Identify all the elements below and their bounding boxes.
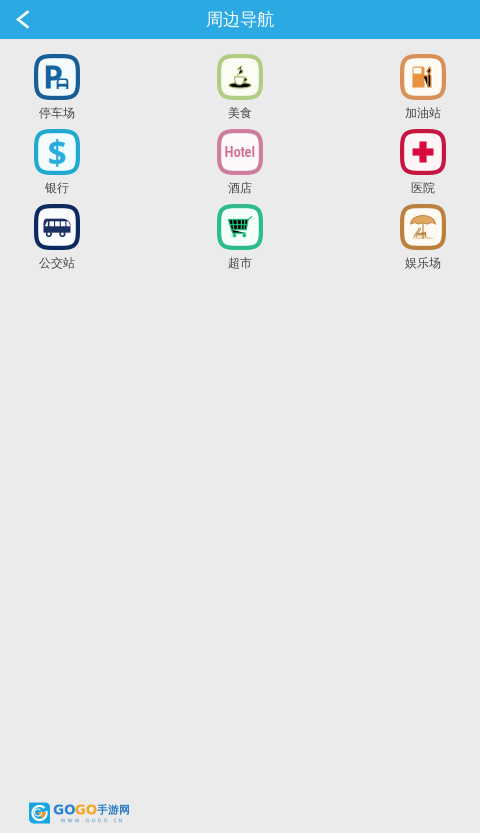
staticText: 美食 [228,106,252,120]
staticText: 周边导航 [206,9,274,30]
staticText: 超市 [228,256,252,270]
staticText: 医院 [411,181,435,195]
button[interactable]: P [34,54,80,120]
button[interactable]: $ [34,129,80,195]
staticText: $ [47,130,66,174]
button[interactable]: 娱乐场 [400,204,446,270]
button[interactable]: 超市 [217,204,263,270]
staticText: 停车场 [39,106,75,120]
staticText: 公交站 [39,256,75,270]
button[interactable]: 美食 [217,54,263,120]
staticText: 手游网 [97,803,130,816]
button[interactable]: Back [0,0,43,39]
staticText: 娱乐场 [405,256,441,270]
staticText: 银行 [45,181,69,195]
staticText: 酒店 [228,181,252,195]
button[interactable]: 加油站 [400,54,446,120]
staticText: P [43,55,63,97]
staticText: GO [75,802,97,818]
button[interactable]: 公交站 [34,204,80,270]
staticText: Hotel [224,143,255,161]
button[interactable]: Hotel [217,129,263,195]
staticText: GO [53,802,75,818]
button[interactable]: 医院 [400,129,446,195]
staticText: 加油站 [405,106,441,120]
staticText: W W W . G O G O . C N [60,818,122,823]
